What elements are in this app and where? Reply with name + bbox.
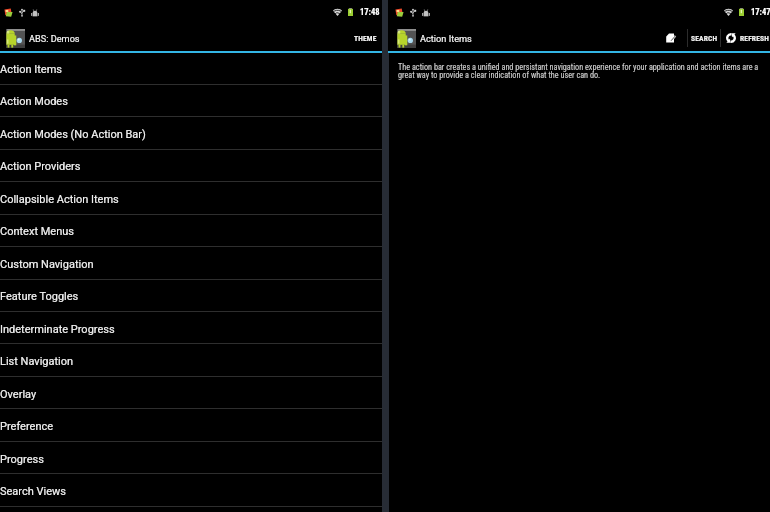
- staticText: Indeterminate Progress: [0, 323, 115, 336]
- button[interactable]: Overlay: [0, 377, 382, 409]
- staticText: 17:47: [751, 7, 770, 17]
- staticText: Action Modes: [0, 95, 68, 108]
- button[interactable]: Action Providers: [0, 149, 382, 181]
- button[interactable]: Custom Navigation: [0, 247, 382, 279]
- button[interactable]: THEME: [344, 25, 382, 51]
- staticText: Custom Navigation: [0, 258, 94, 271]
- staticText: Overlay: [0, 388, 37, 401]
- button[interactable]: Action Modes (No Action Bar): [0, 117, 382, 149]
- button[interactable]: REFRESH: [721, 25, 770, 51]
- staticText: List Navigation: [0, 355, 74, 368]
- button[interactable]: List Navigation: [0, 344, 382, 376]
- staticText: Preference: [0, 420, 54, 433]
- staticText: Collapsible Action Items: [0, 193, 119, 206]
- button[interactable]: Feature Toggles: [0, 279, 382, 311]
- staticText: SEARCH: [691, 34, 718, 43]
- button[interactable]: SEARCH: [688, 25, 720, 51]
- button[interactable]: New message: [655, 25, 687, 51]
- button[interactable]: Progress: [0, 442, 382, 474]
- staticText: The action bar creates a unified and per…: [398, 62, 760, 80]
- staticText: ABS: Demos: [29, 33, 80, 44]
- button[interactable]: Context Menus: [0, 214, 382, 246]
- staticText: Search Views: [0, 485, 66, 498]
- staticText: THEME: [354, 34, 377, 43]
- staticText: Action Providers: [0, 160, 81, 173]
- staticText: Action Items: [420, 33, 472, 44]
- button[interactable]: Action Modes: [0, 84, 382, 116]
- button[interactable]: Search Views: [0, 474, 382, 506]
- button[interactable]: Action Items: [0, 52, 382, 84]
- staticText: Action Modes (No Action Bar): [0, 128, 146, 141]
- staticText: Progress: [0, 453, 44, 466]
- button[interactable]: Indeterminate Progress: [0, 312, 382, 344]
- button[interactable]: Preference: [0, 409, 382, 441]
- staticText: Action Items: [0, 63, 63, 76]
- staticText: Context Menus: [0, 225, 74, 238]
- button[interactable]: Collapsible Action Items: [0, 182, 382, 214]
- staticText: REFRESH: [740, 34, 769, 43]
- staticText: Feature Toggles: [0, 290, 79, 303]
- staticText: 17:48: [360, 7, 380, 17]
